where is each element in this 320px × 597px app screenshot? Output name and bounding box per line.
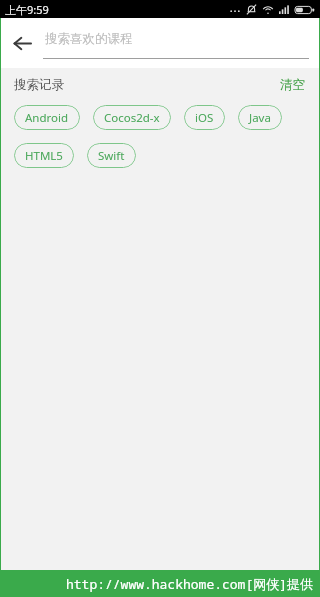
staticText: Cocos2d-x (104, 110, 160, 126)
staticText: 上午9:59 (5, 2, 49, 17)
staticText: HTML5 (25, 148, 63, 164)
button[interactable]: 搜索喜欢的课程 (43, 18, 309, 68)
staticText: 搜索记录 (14, 77, 64, 93)
staticText: 清空 (280, 77, 305, 93)
button[interactable]: Swift (87, 143, 136, 168)
button[interactable]: Android (14, 105, 80, 130)
staticText: Swift (98, 148, 125, 164)
button[interactable]: HTML5 (14, 143, 74, 168)
button[interactable]: iOS (184, 105, 225, 130)
staticText: Java (249, 110, 271, 126)
button[interactable]: 清空 (276, 73, 309, 97)
staticText: iOS (195, 110, 214, 126)
staticText: Android (25, 110, 69, 126)
button[interactable]: Back (1, 18, 43, 68)
staticText: http://www.hackhome.com[网侠]提供 (66, 575, 314, 593)
staticText: 搜索喜欢的课程 (45, 31, 133, 47)
button[interactable]: Java (238, 105, 282, 130)
button[interactable]: Cocos2d-x (93, 105, 171, 130)
